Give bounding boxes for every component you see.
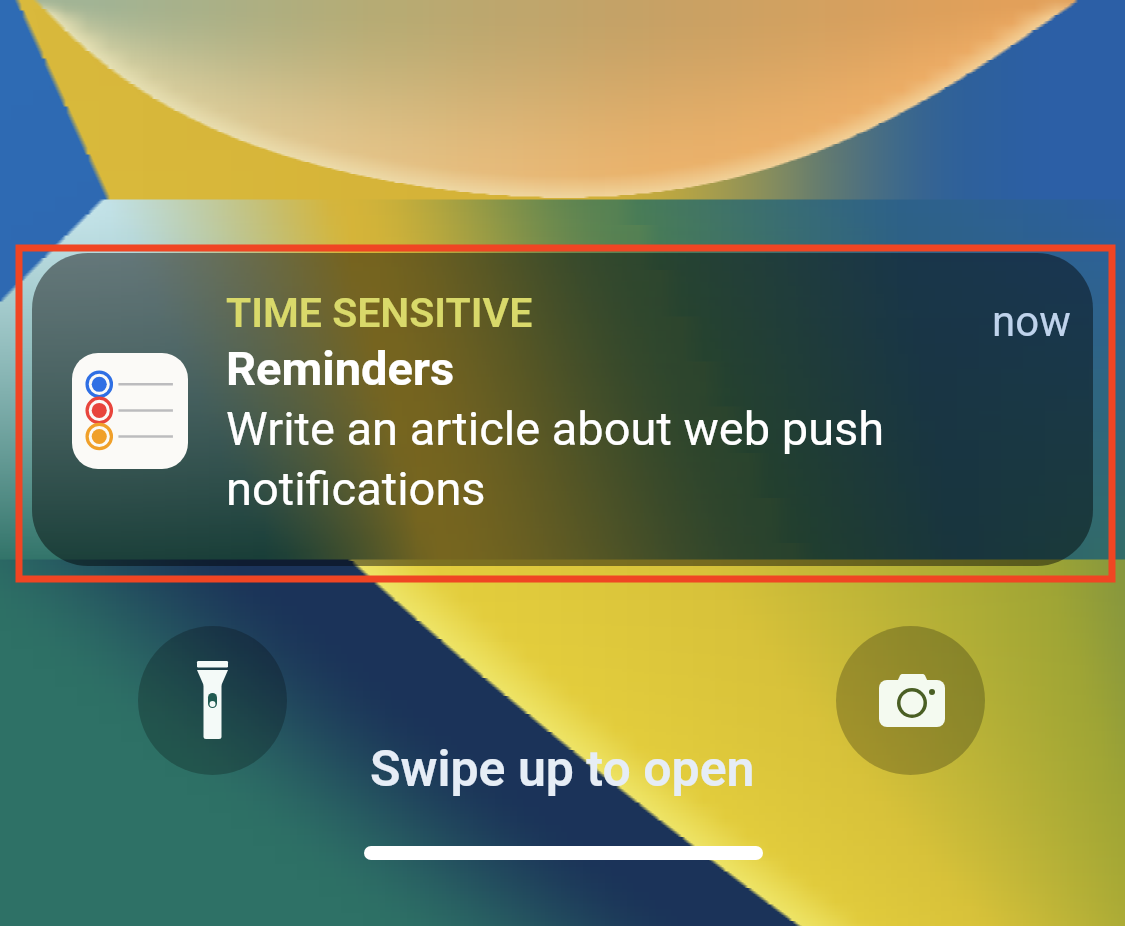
staticText: TIME SENSITIVE bbox=[226, 289, 533, 337]
button[interactable]: TIME SENSITIVE bbox=[32, 253, 1093, 566]
button[interactable]: Flashlight bbox=[138, 626, 287, 775]
staticText: Reminders bbox=[226, 341, 455, 396]
button[interactable]: Camera bbox=[836, 626, 985, 775]
staticText: now bbox=[992, 297, 1071, 346]
staticText: Swipe up to open bbox=[370, 740, 755, 799]
staticText: Write an article about web push notifica… bbox=[226, 401, 926, 516]
